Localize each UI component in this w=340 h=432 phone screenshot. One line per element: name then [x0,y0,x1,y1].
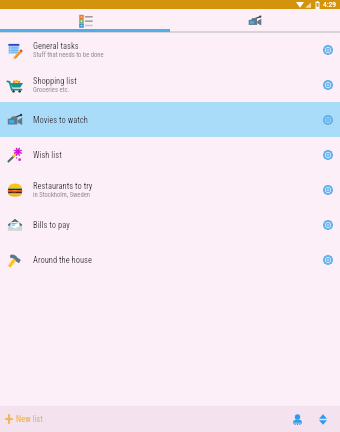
staticText: Around the house [33,255,92,265]
button[interactable]: Around the house [0,242,340,277]
staticText: Groceries etc. [33,86,70,94]
button[interactable]: Sort [312,408,334,430]
button[interactable]: Movies to watch [0,102,340,137]
button[interactable]: Movies tab [170,9,340,32]
button[interactable]: Lists tab [0,9,170,32]
button[interactable]: New list [0,406,49,432]
button[interactable]: General tasks [0,32,340,67]
button[interactable]: Shopping list [0,67,340,102]
staticText: in Stockholm, Sweden [33,191,90,199]
button[interactable]: List options [316,38,340,62]
staticText: Wish list [33,150,62,160]
staticText: General tasks [33,41,79,51]
staticText: Restaurants to try [33,181,93,191]
button[interactable]: List options [316,73,340,97]
button[interactable]: List options [316,143,340,167]
button[interactable]: List options [316,178,340,202]
button[interactable]: Bills to pay [0,207,340,242]
staticText: Movies to watch [33,115,88,125]
staticText: Shopping list [33,76,77,86]
button[interactable]: List options [316,213,340,237]
button[interactable]: Wish list [0,137,340,172]
button[interactable]: Restaurants to try [0,172,340,207]
button[interactable]: List options [316,108,340,132]
staticText: 4:29 [323,0,336,9]
staticText: Bills to pay [33,220,70,230]
button[interactable]: Account [286,408,308,430]
staticText: New list [16,414,43,424]
button[interactable]: List options [316,248,340,272]
staticText: Stuff that needs to be done [33,51,104,59]
